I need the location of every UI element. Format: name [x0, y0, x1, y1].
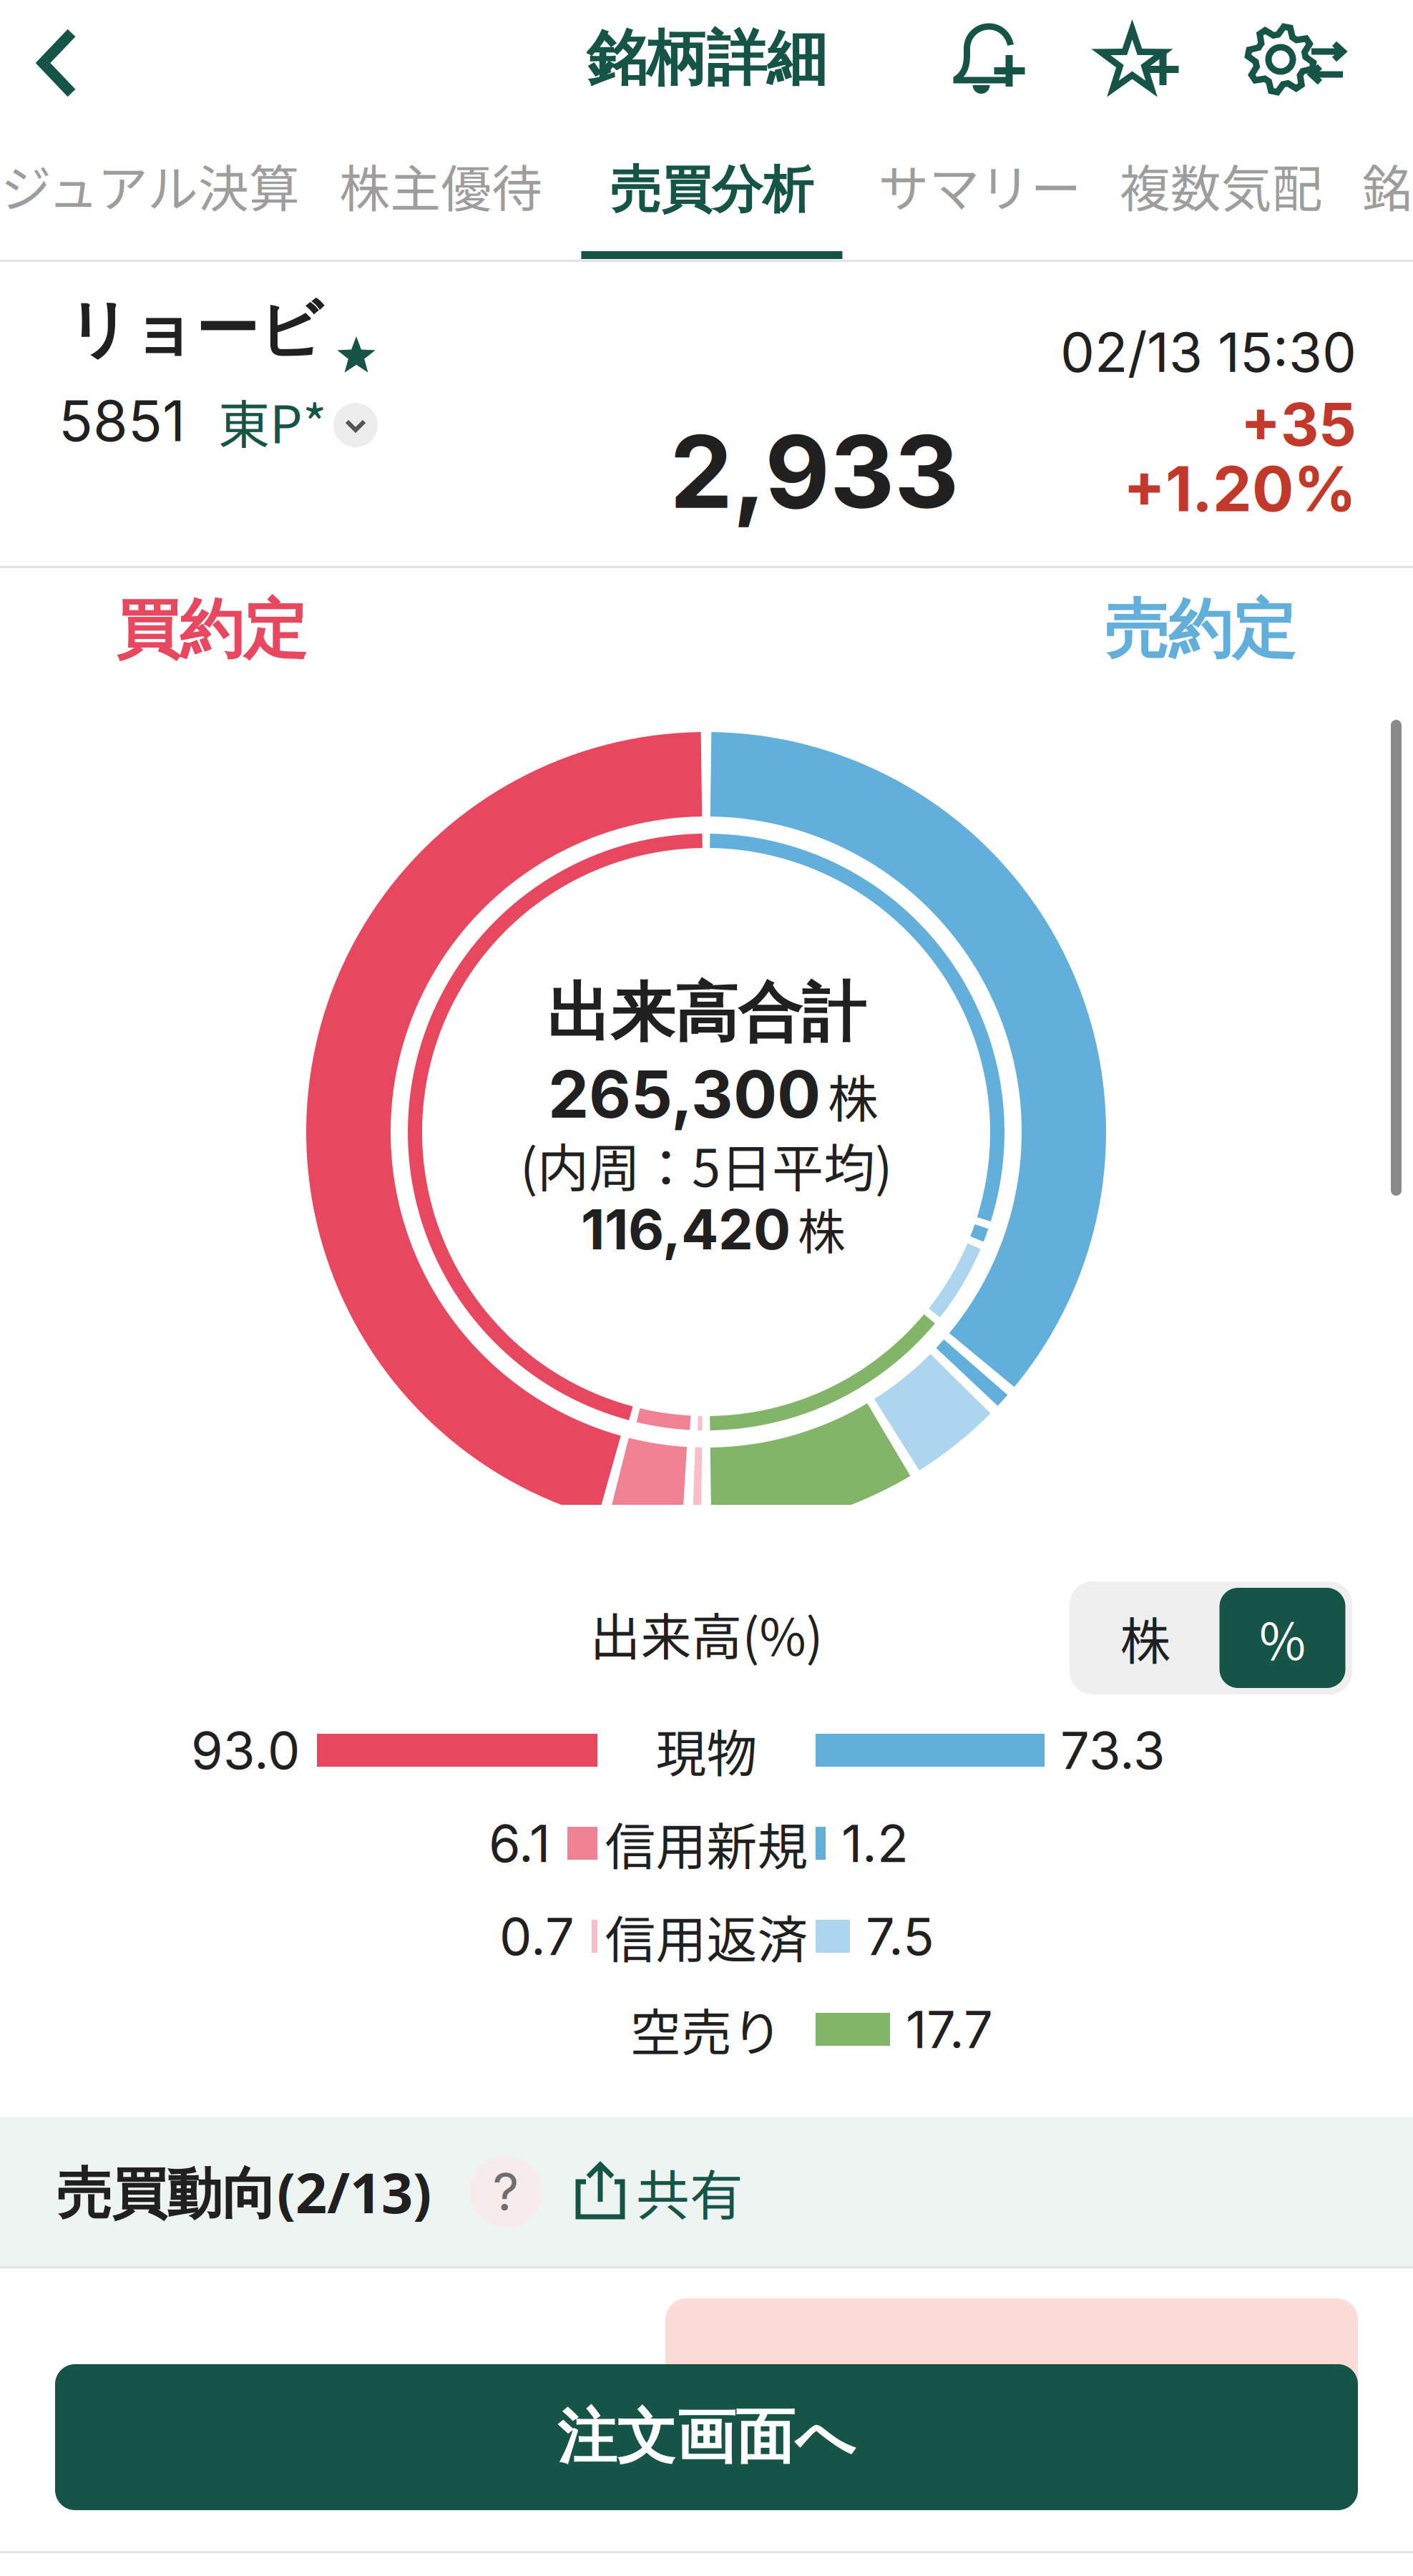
staticText: 信用返済 [605, 1900, 808, 1973]
staticText: 7.5 [866, 1905, 934, 1967]
button[interactable]: 株主優待 [337, 130, 545, 259]
staticText: ジュアル決算 [1, 149, 300, 222]
staticText: 売買動向(2/13) [57, 2154, 431, 2229]
button[interactable]: 売買分析 [581, 130, 842, 259]
staticText: 信用新規 [605, 1807, 808, 1880]
staticText: +35 [1241, 389, 1356, 460]
staticText: 116,420 [581, 1196, 791, 1263]
staticText: 共有 [636, 2153, 743, 2230]
button[interactable]: Add price alert [932, 0, 1047, 122]
staticText: 2,933 [670, 411, 959, 532]
staticText: 空売り [630, 1993, 783, 2066]
staticText: 出来高合計 [547, 973, 865, 1053]
staticText: サマリー [878, 149, 1081, 222]
staticText: % [1259, 1601, 1306, 1674]
button[interactable]: 共有 [575, 2142, 743, 2242]
staticText: 売買分析 [610, 158, 813, 222]
staticText: 5851 [59, 387, 185, 455]
staticText: 株 [798, 1194, 846, 1263]
staticText: 複数気配 [1120, 149, 1323, 222]
staticText: 93.0 [191, 1719, 300, 1781]
staticText: 265,300 [548, 1055, 821, 1133]
button[interactable]: 注文画面へ [55, 2364, 1358, 2510]
staticText: 出来高(%) [590, 1597, 823, 1670]
staticText: 73.3 [1060, 1719, 1165, 1781]
staticText: 銘 [1362, 149, 1413, 222]
button[interactable]: ジュアル決算 [0, 130, 300, 259]
staticText: 02/13 15:30 [1060, 319, 1356, 385]
staticText: 0.7 [499, 1905, 575, 1967]
button[interactable]: サマリー [879, 130, 1081, 259]
staticText: ? [493, 2161, 519, 2223]
staticText: 東P* [218, 383, 327, 458]
staticText: 株主優待 [339, 149, 542, 222]
button[interactable]: Add to watchlist [1083, 0, 1198, 122]
staticText: 17.7 [906, 1998, 993, 2060]
staticText: 株 [828, 1059, 879, 1132]
staticText: 6.1 [489, 1812, 550, 1874]
staticText: (内周：5日平均) [520, 1127, 892, 1202]
button[interactable]: 株 [1071, 1581, 1219, 1694]
staticText: 売約定 [1105, 590, 1296, 670]
button[interactable]: Help [470, 2156, 542, 2228]
staticText: 株 [1120, 1601, 1171, 1674]
staticText: 銘柄詳細 [586, 21, 827, 97]
button[interactable]: 銘 [1361, 130, 1413, 259]
staticText: 注文画面へ [557, 2400, 856, 2474]
staticText: +1.20% [1123, 451, 1356, 526]
staticText: リョービ [67, 290, 323, 370]
staticText: 買約定 [116, 590, 307, 670]
staticText: 1.2 [841, 1812, 909, 1874]
button[interactable]: Back [0, 2, 114, 124]
button[interactable]: Chart settings [1233, 0, 1359, 120]
staticText: 現物 [656, 1714, 757, 1787]
button[interactable]: 複数気配 [1117, 130, 1325, 259]
button[interactable]: % [1219, 1588, 1345, 1688]
